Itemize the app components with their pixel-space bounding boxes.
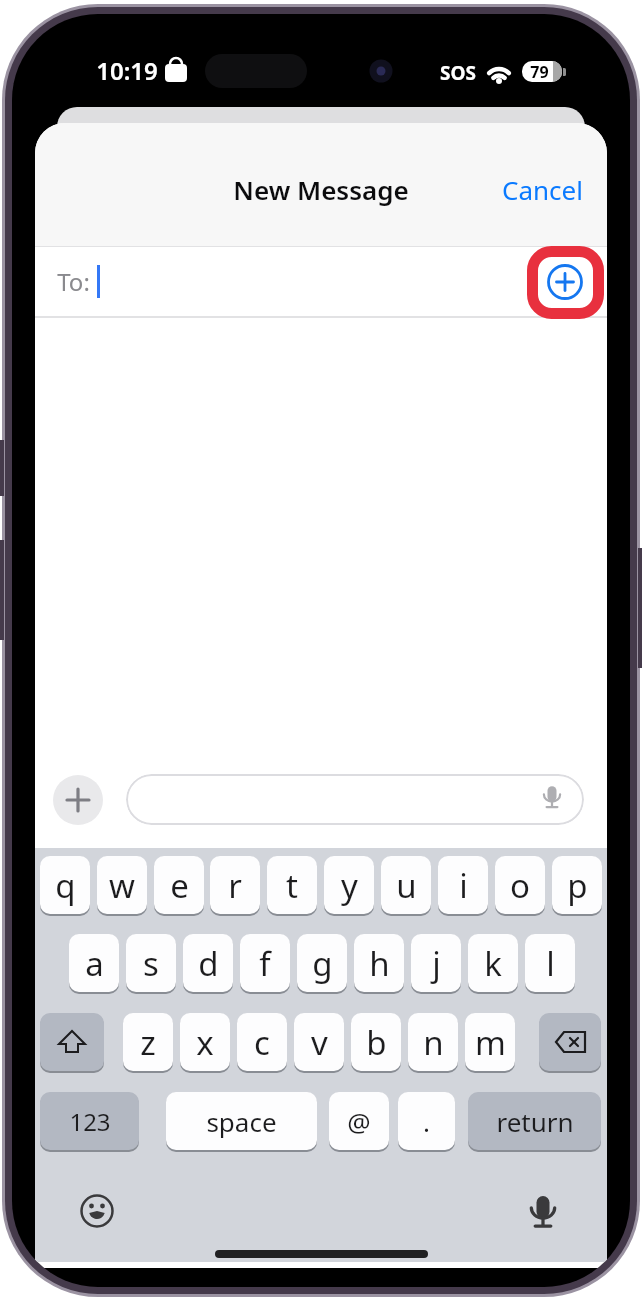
button[interactable]: q [40, 856, 90, 914]
button[interactable]: d [183, 934, 233, 992]
staticText: g [312, 941, 333, 986]
staticText: @ [347, 1104, 371, 1139]
button[interactable]: u [381, 856, 431, 914]
staticText: k [484, 941, 502, 986]
button[interactable]: f [240, 934, 290, 992]
staticText: space [206, 1104, 277, 1139]
button[interactable]: r [210, 856, 260, 914]
button[interactable]: m [465, 1013, 515, 1071]
staticText: t [286, 863, 298, 908]
staticText: d [198, 941, 219, 986]
button[interactable]: z [123, 1013, 173, 1071]
button[interactable]: a [69, 934, 119, 992]
button[interactable] [53, 775, 103, 825]
staticText: x [196, 1020, 214, 1065]
staticText: r [228, 863, 242, 908]
button[interactable]: b [351, 1013, 401, 1071]
staticText: 10:19 [96, 54, 158, 86]
staticText: n [423, 1020, 444, 1065]
button[interactable]: o [495, 856, 545, 914]
staticText: return [496, 1104, 574, 1139]
staticText: SOS [440, 60, 476, 82]
button[interactable]: To: [35, 247, 607, 316]
staticText: p [567, 863, 588, 908]
button[interactable] [536, 254, 594, 311]
staticText: o [510, 863, 530, 908]
button[interactable]: t [267, 856, 317, 914]
button[interactable]: 123 [40, 1092, 139, 1150]
staticText: New Message [233, 172, 409, 207]
staticText: To: [57, 265, 90, 298]
staticText: a [85, 941, 104, 986]
staticText: l [546, 941, 555, 986]
staticText: w [109, 863, 135, 908]
button[interactable]: g [297, 934, 347, 992]
button[interactable]: l [525, 934, 575, 992]
staticText: i [459, 863, 468, 908]
staticText: . [423, 1104, 430, 1139]
button[interactable]: return [468, 1092, 601, 1150]
button[interactable] [40, 1013, 104, 1071]
staticText: 123 [69, 1105, 111, 1138]
button[interactable]: h [354, 934, 404, 992]
staticText: m [475, 1020, 506, 1065]
button[interactable]: @ [329, 1092, 389, 1150]
button[interactable]: w [97, 856, 147, 914]
staticText: 79 [530, 61, 549, 82]
button[interactable]: space [166, 1092, 317, 1150]
button[interactable]: s [126, 934, 176, 992]
button[interactable] [126, 774, 584, 825]
staticText: b [366, 1020, 387, 1065]
button[interactable]: n [408, 1013, 458, 1071]
button[interactable]: v [294, 1013, 344, 1071]
button[interactable]: c [237, 1013, 287, 1071]
staticText: y [341, 863, 358, 908]
staticText: q [55, 863, 76, 908]
staticText: h [369, 941, 390, 986]
staticText: e [170, 863, 189, 908]
button[interactable]: e [154, 856, 204, 914]
button[interactable] [75, 1189, 119, 1233]
staticText: f [259, 941, 271, 986]
button[interactable]: . [398, 1092, 455, 1150]
button[interactable]: x [180, 1013, 230, 1071]
button[interactable]: j [411, 934, 461, 992]
button[interactable]: k [468, 934, 518, 992]
button[interactable] [521, 1189, 565, 1233]
button[interactable]: i [438, 856, 488, 914]
staticText: s [143, 941, 159, 986]
button[interactable]: y [324, 856, 374, 914]
staticText: u [396, 863, 417, 908]
button[interactable]: p [552, 856, 602, 914]
button[interactable]: Cancel [502, 172, 583, 207]
staticText: Cancel [502, 172, 583, 207]
staticText: z [140, 1020, 156, 1065]
staticText: j [432, 941, 441, 986]
button[interactable] [539, 1013, 601, 1071]
staticText: v [311, 1020, 328, 1065]
staticText: c [254, 1020, 270, 1065]
